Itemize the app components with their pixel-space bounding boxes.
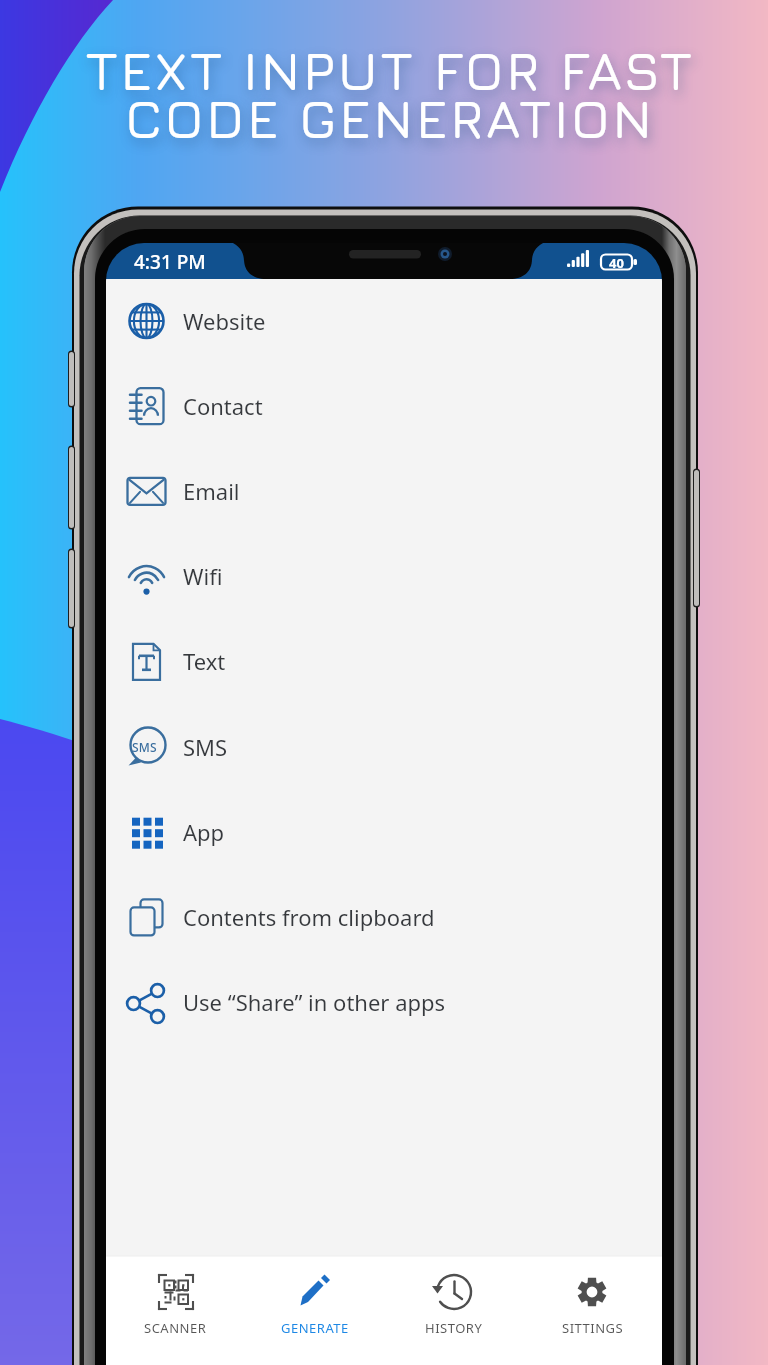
staticText: Contact <box>183 391 263 421</box>
button[interactable]: Wifi <box>106 544 662 608</box>
button[interactable]: Contents from clipboard <box>106 885 662 949</box>
button[interactable]: Website <box>106 289 662 353</box>
staticText: App <box>183 817 225 847</box>
button[interactable]: HISTORY <box>385 1258 523 1352</box>
staticText: SMS <box>132 739 157 755</box>
staticText: Wifi <box>183 561 223 591</box>
staticText: 4:31 PM <box>134 249 206 275</box>
staticText: SITTINGS <box>562 1319 624 1337</box>
staticText: Use “Share” in other apps <box>183 987 446 1017</box>
staticText: Text <box>183 646 226 676</box>
button[interactable]: SCANNER <box>106 1258 244 1352</box>
staticText: Email <box>183 476 240 506</box>
staticText: CODE GENERATION <box>125 86 655 150</box>
staticText: Website <box>183 306 266 336</box>
button[interactable]: Use “Share” in other apps <box>106 970 662 1034</box>
button[interactable]: Email <box>106 459 662 523</box>
button[interactable]: SMS <box>106 715 662 779</box>
staticText: SMS <box>183 732 228 762</box>
button[interactable]: App <box>106 800 662 864</box>
staticText: SCANNER <box>144 1319 207 1337</box>
button[interactable]: Text <box>106 629 662 693</box>
button[interactable]: Contact <box>106 374 662 438</box>
staticText: Contents from clipboard <box>183 902 435 932</box>
staticText: GENERATE <box>281 1319 349 1337</box>
staticText: 40 <box>609 254 624 269</box>
button[interactable]: GENERATE <box>246 1258 384 1352</box>
staticText: TEXT INPUT FOR FAST <box>85 38 695 102</box>
button[interactable]: SITTINGS <box>524 1258 662 1352</box>
staticText: HISTORY <box>425 1319 483 1337</box>
